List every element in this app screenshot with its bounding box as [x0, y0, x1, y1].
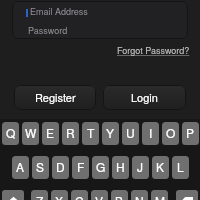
- button[interactable]: X: [51, 190, 68, 200]
- staticText: N: [135, 192, 144, 200]
- staticText: M: [155, 192, 165, 200]
- staticText: O: [166, 124, 176, 141]
- button[interactable]: Y: [102, 122, 119, 145]
- button[interactable]: I: [142, 122, 159, 145]
- button[interactable]: D: [52, 156, 69, 179]
- staticText: Z: [36, 192, 44, 200]
- staticText: T: [87, 124, 95, 141]
- button[interactable]: Email Address: [12, 1, 188, 21]
- button[interactable]: K: [152, 156, 169, 179]
- staticText: E: [46, 124, 55, 141]
- button[interactable]: P: [182, 122, 199, 145]
- staticText: Email Address: [30, 5, 88, 18]
- button[interactable]: N: [131, 190, 148, 200]
- button[interactable]: Q: [2, 122, 19, 145]
- button[interactable]: S: [32, 156, 49, 179]
- staticText: Login: [131, 89, 158, 105]
- button[interactable]: U: [122, 122, 139, 145]
- staticText: Register: [35, 89, 76, 105]
- button[interactable]: Login: [103, 85, 186, 110]
- button[interactable]: Z: [31, 190, 48, 200]
- staticText: Q: [6, 124, 16, 141]
- staticText: P: [186, 124, 195, 141]
- button[interactable]: T: [82, 122, 99, 145]
- button[interactable]: J: [132, 156, 149, 179]
- button[interactable]: Password: [12, 21, 188, 39]
- button[interactable]: Backspace: [176, 190, 198, 200]
- button[interactable]: V: [91, 190, 108, 200]
- staticText: J: [137, 158, 144, 175]
- staticText: D: [56, 158, 65, 175]
- staticText: R: [66, 124, 75, 141]
- staticText: K: [156, 158, 165, 175]
- button[interactable]: Register: [14, 85, 96, 110]
- staticText: G: [96, 158, 106, 175]
- staticText: S: [36, 158, 45, 175]
- staticText: Forgot Password?: [117, 44, 190, 57]
- staticText: F: [77, 158, 85, 175]
- staticText: L: [177, 158, 184, 175]
- staticText: I: [149, 124, 153, 141]
- button[interactable]: C: [71, 190, 88, 200]
- button[interactable]: L: [172, 156, 189, 179]
- button[interactable]: M: [151, 190, 168, 200]
- button[interactable]: F: [72, 156, 89, 179]
- staticText: C: [75, 192, 84, 200]
- button[interactable]: A: [12, 156, 29, 179]
- button[interactable]: W: [22, 122, 39, 145]
- staticText: Y: [106, 124, 115, 141]
- staticText: H: [116, 158, 125, 175]
- staticText: Password: [28, 24, 68, 37]
- button[interactable]: Forgot Password?: [117, 44, 190, 57]
- button[interactable]: R: [62, 122, 79, 145]
- button[interactable]: H: [112, 156, 129, 179]
- button[interactable]: Shift: [2, 190, 24, 200]
- button[interactable]: G: [92, 156, 109, 179]
- button[interactable]: E: [42, 122, 59, 145]
- button[interactable]: B: [111, 190, 128, 200]
- staticText: U: [126, 124, 135, 141]
- staticText: B: [115, 192, 124, 200]
- staticText: X: [55, 192, 64, 200]
- button[interactable]: O: [162, 122, 179, 145]
- staticText: W: [25, 124, 37, 141]
- staticText: A: [16, 158, 25, 175]
- staticText: V: [95, 192, 104, 200]
